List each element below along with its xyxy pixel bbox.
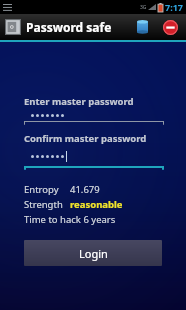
staticText: Enter master password: [24, 95, 134, 108]
button[interactable]: Database: [131, 16, 153, 38]
staticText: Confirm master password: [24, 132, 147, 145]
staticText: Login: [79, 246, 108, 261]
staticText: Password safe: [26, 19, 112, 35]
staticText: Time to hack 6 years: [24, 213, 116, 226]
staticText: 41.679: [70, 183, 100, 196]
staticText: 3G: [140, 4, 147, 11]
button[interactable]: [24, 151, 164, 171]
staticText: Strength: [24, 198, 63, 211]
button[interactable]: Login: [24, 240, 162, 266]
staticText: reasonable: [70, 198, 123, 211]
button[interactable]: [24, 114, 164, 126]
button[interactable]: Lock database: [159, 16, 181, 38]
staticText: Entropy: [24, 183, 59, 196]
staticText: 7:17: [165, 1, 183, 13]
